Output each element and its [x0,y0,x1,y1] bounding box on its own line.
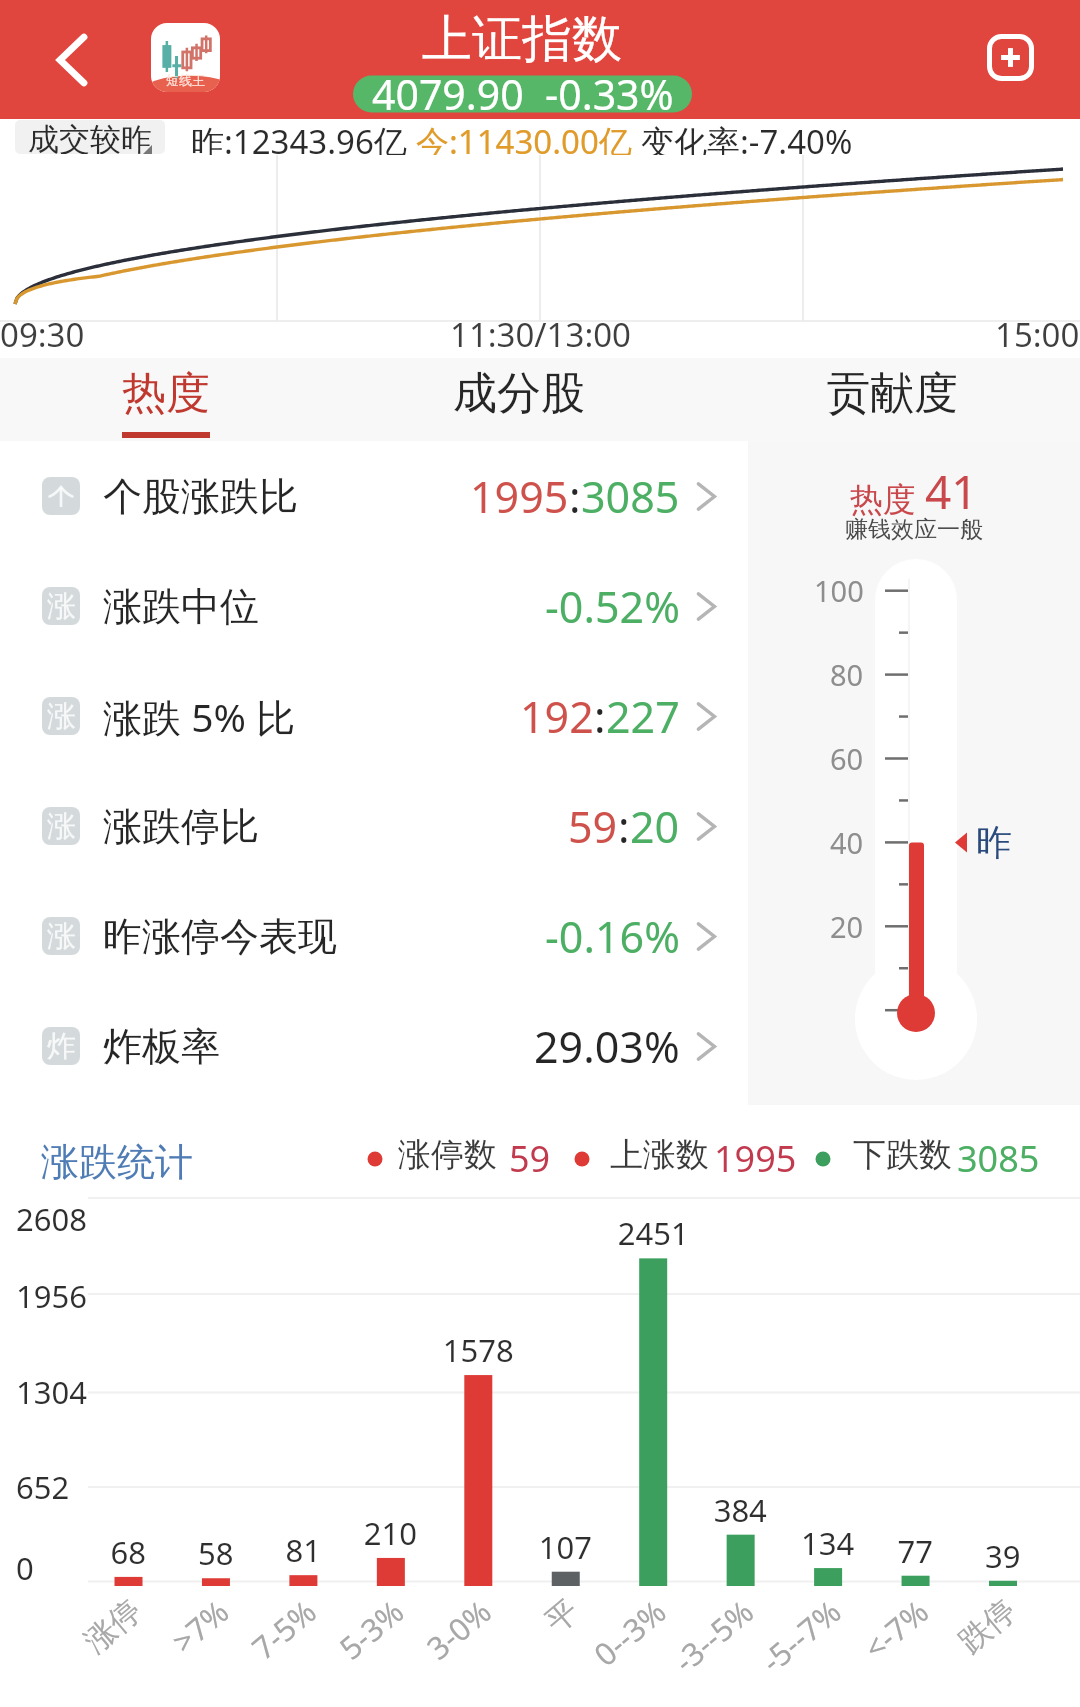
button[interactable]: 涨 [0,771,748,881]
staticText: 11:30/13:00 [450,312,631,357]
button[interactable]: 涨跌统计 [41,1138,193,1186]
button[interactable]: 热度 [56,358,276,441]
staticText: 227 [606,687,680,746]
staticText: 涨跌停比 [103,802,259,851]
staticText: 涨 [47,698,76,735]
staticText: 个股涨跌比 [103,472,298,521]
button[interactable]: App icon [151,23,220,92]
staticText: 3085 [581,467,680,526]
staticText: 涨跌统计 [41,1138,193,1186]
button[interactable]: Add [974,21,1047,94]
staticText: -0.16% [545,907,680,966]
staticText: 昨:12343.96亿 [191,119,416,155]
staticText: 成交较昨 [28,120,152,154]
staticText: 15:00 [995,312,1080,357]
staticText: 09:30 [0,312,85,357]
staticText: : [594,687,606,746]
staticText: 今:11430.00亿 [416,119,641,155]
staticText: 热度 [122,366,210,421]
staticText: 变化率:-7.40% [641,119,853,155]
staticText: 上证指数 [422,8,622,71]
staticText: 涨跌 5% 比 [103,690,295,743]
staticText: 20 [630,797,680,856]
staticText: 192 [520,687,594,746]
staticText: 下跌数 [853,1134,952,1176]
staticText: 涨 [47,588,76,625]
staticText: 41 [925,460,978,523]
staticText: 4079.90 -0.33% [372,66,674,122]
staticText: 3085 [957,1134,1040,1183]
staticText: -0.52% [545,577,680,636]
button[interactable]: 个股涨跌比 [0,441,748,551]
staticText: : [618,797,630,856]
staticText: 涨停数 [398,1134,497,1176]
button[interactable]: Back [34,22,109,97]
staticText: 昨涨停今表现 [103,912,337,961]
staticText: 29.03% [534,1017,680,1076]
staticText: 贡献度 [826,366,958,421]
button[interactable]: 涨 [0,881,748,991]
staticText: 炸 [47,1028,76,1065]
button[interactable]: 炸 [0,991,748,1101]
staticText: 短线王 [166,72,205,88]
staticText: : [569,467,581,526]
staticText: 涨 [47,918,76,955]
staticText: 热度 [850,476,925,521]
staticText: 上涨数 [610,1134,709,1176]
button[interactable]: 涨 [0,661,748,771]
staticText: 涨 [47,808,76,845]
staticText: 赚钱效应一般 [845,515,983,544]
button[interactable]: 涨 [0,551,748,661]
staticText: 1995 [470,467,569,526]
button[interactable]: 成分股 [409,358,629,441]
staticText: 涨跌中位 [103,582,259,631]
staticText: 成分股 [453,366,585,421]
staticText: 59 [568,797,618,856]
staticText: 1995 [714,1134,797,1183]
staticText: 59 [509,1134,551,1183]
staticText: 炸板率 [103,1022,220,1071]
button[interactable]: 成交较昨 [15,120,165,154]
button[interactable]: 贡献度 [782,358,1002,441]
